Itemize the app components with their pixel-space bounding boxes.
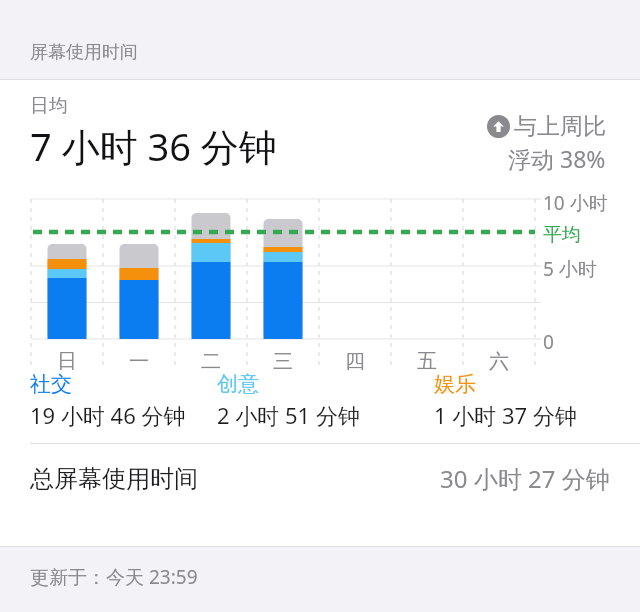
staticText: 创意 (217, 371, 259, 397)
staticText: 30 小时 27 分钟 (440, 462, 610, 495)
staticText: 二 (175, 349, 247, 374)
staticText: 五 (391, 349, 463, 374)
button[interactable]: 总屏幕使用时间 (0, 444, 640, 513)
staticText: 19 小时 46 分钟 (30, 400, 186, 430)
button[interactable]: 娱乐 (434, 371, 640, 430)
button[interactable]: 社交 (0, 371, 217, 430)
staticText: 社交 (30, 371, 72, 397)
staticText: 日均 (30, 94, 68, 118)
staticText: 日 (31, 349, 103, 374)
staticText: 0 (543, 329, 554, 355)
staticText: 一 (103, 349, 175, 374)
button[interactable]: 创意 (217, 371, 434, 430)
staticText: 1 小时 37 分钟 (434, 400, 577, 430)
staticText: 屏幕使用时间 (30, 41, 138, 64)
staticText: 浮动 38% (508, 143, 606, 174)
other: 上升 (487, 115, 510, 138)
staticText: 三 (247, 349, 319, 374)
staticText: 与上周比 (514, 112, 606, 141)
staticText: 10 小时 (543, 190, 608, 216)
staticText: 7 小时 36 分钟 (30, 120, 277, 172)
staticText: 六 (463, 349, 535, 374)
staticText: 更新于：今天 23:59 (30, 564, 198, 590)
staticText: 2 小时 51 分钟 (217, 400, 360, 430)
staticText: 总屏幕使用时间 (30, 464, 198, 494)
staticText: 平均 (543, 223, 581, 247)
staticText: 娱乐 (434, 371, 476, 397)
button[interactable]: 日均 (0, 80, 640, 546)
staticText: 5 小时 (543, 256, 597, 282)
staticText: 四 (319, 349, 391, 374)
